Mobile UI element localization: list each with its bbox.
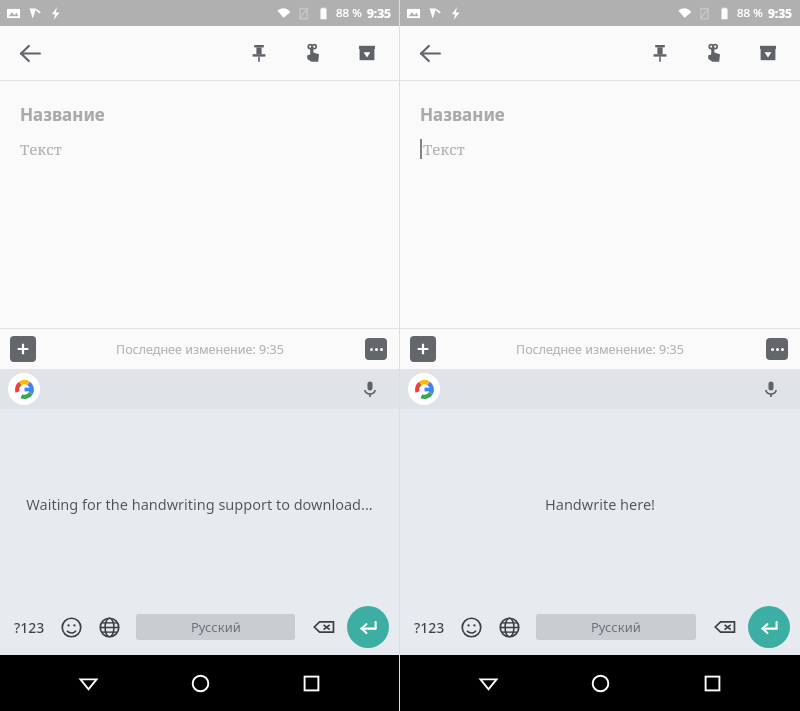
button[interactable]: Русский — [536, 614, 696, 640]
button[interactable]: Change language — [90, 605, 128, 649]
button[interactable]: Back — [408, 31, 452, 75]
staticText: 9:35 — [768, 5, 792, 21]
staticText: Русский — [191, 618, 241, 636]
button[interactable]: Enter — [347, 606, 389, 648]
button[interactable]: ?123 — [406, 605, 452, 649]
staticText: Текст — [20, 139, 62, 159]
button[interactable]: Backspace — [704, 605, 746, 649]
button[interactable]: Pin — [237, 31, 281, 75]
staticText: Название — [20, 103, 105, 126]
staticText: Handwrite here! — [545, 494, 655, 514]
button[interactable]: Back — [464, 659, 512, 707]
button[interactable]: Archive — [345, 31, 389, 75]
staticText: Русский — [591, 618, 641, 636]
button[interactable]: Home — [176, 659, 224, 707]
button[interactable]: Enter — [748, 606, 790, 648]
button[interactable]: Add — [410, 336, 436, 362]
button[interactable]: Emoji — [52, 605, 90, 649]
staticText: 88 % — [737, 5, 763, 21]
button[interactable]: Reminder — [291, 31, 335, 75]
button[interactable]: More options — [365, 338, 387, 360]
button[interactable]: Recents — [287, 659, 335, 707]
button[interactable]: Voice input — [756, 374, 786, 404]
button[interactable]: ?123 — [6, 605, 52, 649]
button[interactable]: Emoji — [452, 605, 490, 649]
button[interactable]: Русский — [136, 614, 295, 640]
staticText: ?123 — [14, 618, 45, 637]
staticText: Название — [420, 103, 505, 126]
staticText: Текст — [423, 139, 465, 159]
button[interactable]: Back — [64, 659, 112, 707]
button[interactable]: Google — [408, 373, 440, 405]
staticText: Последнее изменение: 9:35 — [516, 341, 684, 358]
button[interactable]: Home — [576, 659, 624, 707]
button[interactable]: Backspace — [303, 605, 345, 649]
button[interactable]: Change language — [490, 605, 528, 649]
button[interactable]: Recents — [688, 659, 736, 707]
button[interactable]: Pin — [638, 31, 682, 75]
staticText: 88 % — [336, 5, 362, 21]
button[interactable]: Add — [10, 336, 36, 362]
button[interactable]: Google — [8, 373, 40, 405]
button[interactable]: Back — [8, 31, 52, 75]
staticText: ?123 — [414, 618, 445, 637]
button[interactable]: More options — [766, 338, 788, 360]
button[interactable]: Reminder — [692, 31, 736, 75]
staticText: Последнее изменение: 9:35 — [116, 341, 284, 358]
staticText: 9:35 — [367, 5, 391, 21]
button[interactable]: Voice input — [355, 374, 385, 404]
button[interactable]: Archive — [746, 31, 790, 75]
staticText: Waiting for the handwriting support to d… — [26, 494, 373, 514]
